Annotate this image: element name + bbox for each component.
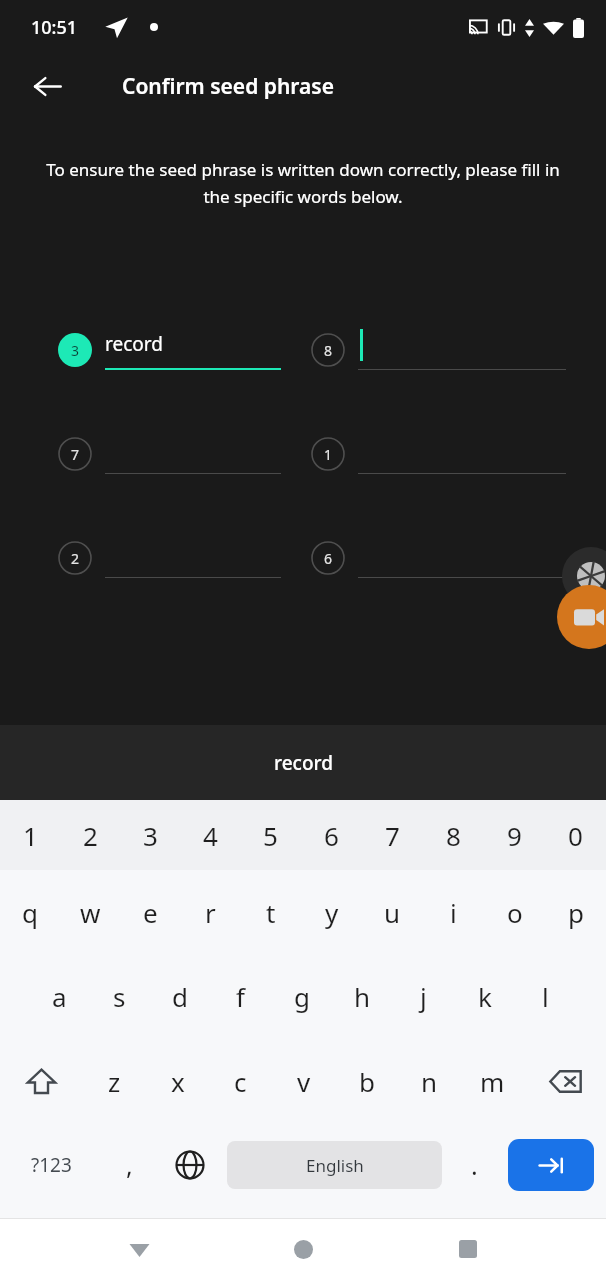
- button[interactable]: a: [29, 954, 89, 1038]
- button[interactable]: f: [210, 954, 271, 1038]
- button[interactable]: v: [272, 1038, 335, 1124]
- button[interactable]: 7: [362, 800, 423, 870]
- staticText: a: [52, 979, 67, 1014]
- button[interactable]: d: [149, 954, 210, 1038]
- staticText: ?123: [31, 1152, 72, 1178]
- staticText: r: [205, 895, 216, 930]
- button[interactable]: 8: [311, 328, 566, 372]
- button[interactable]: s: [89, 954, 149, 1038]
- staticText: m: [480, 1064, 505, 1099]
- button[interactable]: 8: [423, 800, 484, 870]
- staticText: 9: [507, 818, 522, 853]
- button[interactable]: w: [60, 870, 120, 954]
- button[interactable]: English: [227, 1141, 442, 1189]
- button[interactable]: Screenshot: [562, 547, 606, 605]
- staticText: w: [80, 895, 101, 930]
- button[interactable]: p: [545, 870, 606, 954]
- button[interactable]: Record video: [557, 585, 606, 649]
- staticText: 6: [324, 818, 339, 853]
- staticText: 3: [143, 818, 158, 853]
- staticText: k: [478, 979, 492, 1014]
- staticText: p: [568, 895, 584, 930]
- button[interactable]: 5: [240, 800, 301, 870]
- staticText: f: [236, 979, 245, 1014]
- button[interactable]: 1: [311, 432, 566, 476]
- staticText: n: [421, 1064, 438, 1099]
- button[interactable]: z: [83, 1038, 146, 1124]
- button[interactable]: u: [362, 870, 423, 954]
- button[interactable]: o: [484, 870, 545, 954]
- staticText: 7: [385, 818, 400, 853]
- staticText: record: [274, 750, 333, 776]
- staticText: j: [420, 979, 427, 1014]
- button[interactable]: 3: [58, 328, 281, 372]
- staticText: x: [171, 1064, 185, 1099]
- button[interactable]: Shift: [0, 1038, 83, 1124]
- staticText: 7: [71, 445, 80, 464]
- staticText: .: [471, 1148, 478, 1182]
- button[interactable]: t: [240, 870, 301, 954]
- button[interactable]: r: [180, 870, 240, 954]
- staticText: 4: [203, 818, 218, 853]
- staticText: 10:51: [31, 15, 78, 40]
- staticText: 1: [324, 445, 333, 464]
- button[interactable]: l: [515, 954, 576, 1038]
- button[interactable]: 1: [0, 800, 60, 870]
- staticText: o: [507, 895, 523, 930]
- button[interactable]: Backspace: [524, 1038, 606, 1124]
- button[interactable]: q: [0, 870, 60, 954]
- staticText: q: [22, 895, 38, 930]
- staticText: b: [359, 1064, 375, 1099]
- staticText: v: [297, 1064, 311, 1099]
- staticText: s: [113, 979, 126, 1014]
- button[interactable]: Change language: [157, 1124, 222, 1206]
- button[interactable]: i: [423, 870, 484, 954]
- button[interactable]: Home: [277, 1223, 329, 1275]
- button[interactable]: 2: [60, 800, 120, 870]
- staticText: z: [108, 1064, 121, 1099]
- button[interactable]: .: [447, 1124, 502, 1206]
- button[interactable]: b: [335, 1038, 398, 1124]
- staticText: 5: [263, 818, 278, 853]
- button[interactable]: 0: [545, 800, 606, 870]
- button[interactable]: m: [461, 1038, 524, 1124]
- button[interactable]: 6: [311, 536, 566, 580]
- staticText: Confirm seed phrase: [122, 72, 334, 101]
- button[interactable]: j: [393, 954, 454, 1038]
- staticText: l: [542, 979, 549, 1014]
- button[interactable]: ,: [102, 1124, 157, 1206]
- button[interactable]: 3: [120, 800, 180, 870]
- staticText: g: [294, 979, 310, 1014]
- button[interactable]: 7: [58, 432, 281, 476]
- button[interactable]: x: [146, 1038, 209, 1124]
- button[interactable]: y: [301, 870, 362, 954]
- button[interactable]: record: [252, 742, 355, 784]
- button[interactable]: n: [398, 1038, 461, 1124]
- staticText: e: [143, 895, 158, 930]
- button[interactable]: Hide keyboard: [113, 1223, 165, 1275]
- staticText: 2: [71, 549, 80, 568]
- staticText: To ensure the seed phrase is written dow…: [40, 158, 566, 208]
- button[interactable]: h: [332, 954, 393, 1038]
- staticText: record: [105, 331, 163, 357]
- staticText: English: [306, 1154, 364, 1177]
- button[interactable]: c: [209, 1038, 272, 1124]
- staticText: h: [354, 979, 371, 1014]
- staticText: 8: [324, 341, 333, 360]
- button[interactable]: 4: [180, 800, 240, 870]
- button[interactable]: g: [271, 954, 332, 1038]
- button[interactable]: k: [454, 954, 515, 1038]
- button[interactable]: 6: [301, 800, 362, 870]
- staticText: 2: [83, 818, 98, 853]
- staticText: 1: [23, 818, 38, 853]
- button[interactable]: 2: [58, 536, 281, 580]
- button[interactable]: 9: [484, 800, 545, 870]
- button[interactable]: e: [120, 870, 180, 954]
- button[interactable]: Back: [23, 62, 71, 110]
- staticText: u: [384, 895, 401, 930]
- staticText: 0: [568, 818, 583, 853]
- button[interactable]: Next: [508, 1139, 594, 1191]
- button[interactable]: Recent apps: [442, 1223, 494, 1275]
- button[interactable]: ?123: [0, 1124, 102, 1206]
- staticText: y: [325, 895, 339, 930]
